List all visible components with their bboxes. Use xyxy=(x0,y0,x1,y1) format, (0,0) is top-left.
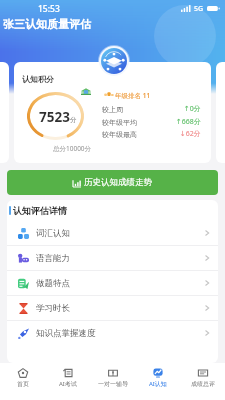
staticText: 5G xyxy=(194,4,204,14)
staticText: ↑0分 xyxy=(184,104,201,114)
staticText: 知识点掌握速度 xyxy=(36,328,96,339)
staticText: ↑668分 xyxy=(176,117,201,127)
staticText: 张三认知质量评估 xyxy=(3,17,91,31)
staticText: 较年级平均 xyxy=(102,118,137,127)
button[interactable]: 做题特点 xyxy=(7,271,218,295)
staticText: 语言能力 xyxy=(36,253,70,264)
staticText: AI考试 xyxy=(59,380,77,388)
staticText: 认知积分 xyxy=(22,74,54,84)
staticText: 词汇认知 xyxy=(36,228,70,239)
button[interactable]: 语言能力 xyxy=(7,246,218,270)
button[interactable]: AI认知 xyxy=(135,363,180,400)
staticText: 7523 xyxy=(39,108,70,126)
button[interactable]: 成绩总评 xyxy=(180,363,225,400)
staticText: 首页 xyxy=(17,380,29,388)
staticText: 年级排名 11 xyxy=(115,91,151,100)
button[interactable]: 学习时长 xyxy=(7,296,218,320)
staticText: 一对一辅导 xyxy=(98,380,128,388)
staticText: 历史认知成绩走势 xyxy=(84,177,152,188)
button[interactable]: 历史认知成绩走势 xyxy=(7,170,218,195)
button[interactable]: 知识点掌握速度 xyxy=(7,321,218,345)
staticText: 较年级最高 xyxy=(102,130,137,139)
staticText: 学习时长 xyxy=(36,303,70,314)
staticText: 较上周 xyxy=(102,105,123,114)
button[interactable]: 一对一辅导 xyxy=(90,363,135,400)
staticText: 成绩总评 xyxy=(191,380,215,388)
staticText: 分 xyxy=(70,116,77,124)
staticText: 15:53 xyxy=(38,3,60,15)
staticText: 总分10000分 xyxy=(53,144,92,153)
button[interactable]: 首页 xyxy=(0,363,45,400)
staticText: 认知评估详情 xyxy=(13,205,67,216)
staticText: 做题特点 xyxy=(36,278,70,289)
staticText: ↓62分 xyxy=(180,129,201,139)
button[interactable]: AI考试 xyxy=(45,363,90,400)
staticText: AI认知 xyxy=(149,380,167,388)
button[interactable]: 词汇认知 xyxy=(7,221,218,245)
